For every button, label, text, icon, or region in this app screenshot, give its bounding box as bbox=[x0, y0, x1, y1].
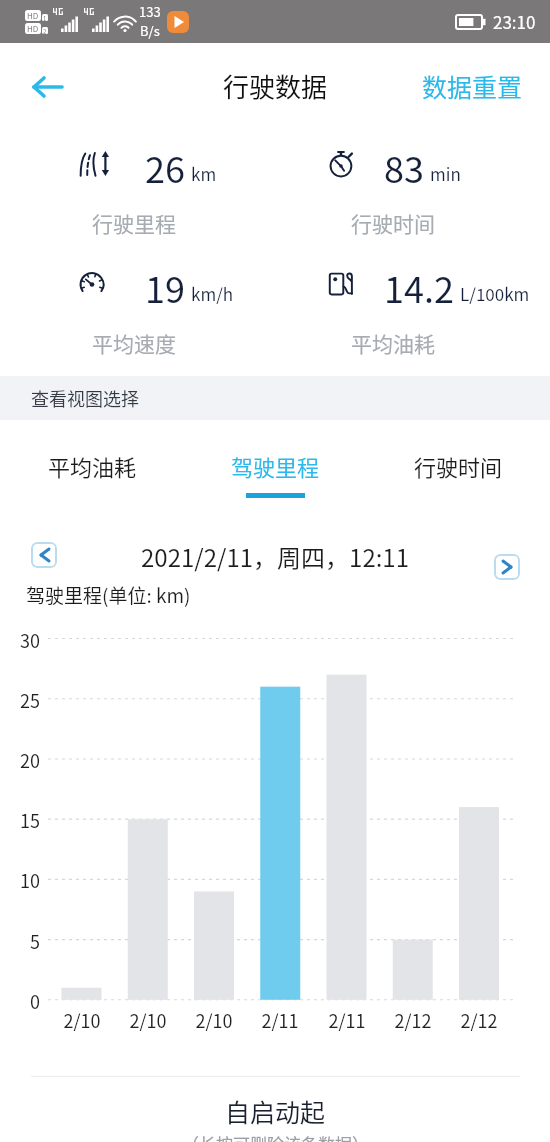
staticText: 2/10 bbox=[115, 1007, 181, 1033]
staticText: 查看视图选择 bbox=[31, 385, 139, 411]
staticText: 2 bbox=[43, 27, 47, 34]
staticText: 数据重置 bbox=[422, 68, 523, 104]
staticText: 2/12 bbox=[446, 1007, 512, 1033]
staticText: 23:10 bbox=[493, 9, 536, 34]
staticText: 驾驶里程 bbox=[231, 450, 320, 482]
staticText: 25 bbox=[0, 687, 40, 713]
staticText: 5 bbox=[0, 928, 40, 954]
staticText: km/h bbox=[191, 281, 234, 306]
staticText: B/s bbox=[140, 21, 160, 40]
staticText: 2021/2/11，周四，12:11 bbox=[141, 539, 410, 574]
staticText: 10 bbox=[0, 867, 40, 893]
staticText: min bbox=[430, 161, 461, 186]
staticText: 20 bbox=[0, 747, 40, 773]
staticText: 30 bbox=[0, 627, 40, 653]
staticText: 2/11 bbox=[314, 1007, 380, 1033]
staticText: 14.2 bbox=[384, 261, 454, 313]
button[interactable]: 数据重置 bbox=[422, 68, 523, 104]
staticText: 驾驶里程(单位: km) bbox=[26, 581, 191, 609]
button[interactable]: Back bbox=[18, 58, 75, 115]
staticText: km bbox=[191, 161, 217, 186]
staticText: 2/10 bbox=[49, 1007, 115, 1033]
staticText: 自启动起 bbox=[225, 1093, 326, 1129]
button[interactable]: Next bbox=[494, 554, 520, 580]
staticText: 行驶时间 bbox=[414, 450, 503, 482]
staticText: 0 bbox=[0, 988, 40, 1014]
staticText: 平均油耗 bbox=[351, 328, 435, 358]
staticText: 2/12 bbox=[380, 1007, 446, 1033]
staticText: HD bbox=[27, 10, 39, 21]
staticText: 15 bbox=[0, 807, 40, 833]
button[interactable]: 平均油耗 bbox=[0, 438, 184, 500]
staticText: 行驶里程 bbox=[92, 208, 176, 238]
staticText: 行驶时间 bbox=[351, 208, 435, 238]
staticText: 平均速度 bbox=[92, 328, 176, 358]
staticText: 133 bbox=[139, 2, 161, 21]
staticText: 1 bbox=[43, 14, 47, 21]
button[interactable]: 驾驶里程 bbox=[184, 438, 367, 500]
staticText: 26 bbox=[145, 141, 185, 193]
staticText: 19 bbox=[145, 261, 185, 313]
staticText: 行驶数据 bbox=[223, 67, 328, 105]
staticText: 2/10 bbox=[181, 1007, 247, 1033]
staticText: （长按可删除该条数据） bbox=[182, 1131, 369, 1142]
button[interactable]: 行驶时间 bbox=[367, 438, 550, 500]
staticText: 平均油耗 bbox=[48, 450, 137, 482]
staticText: L/100km bbox=[460, 281, 530, 306]
staticText: 83 bbox=[384, 141, 424, 193]
staticText: HD bbox=[27, 23, 39, 34]
staticText: 2/11 bbox=[247, 1007, 313, 1033]
button[interactable]: Previous bbox=[31, 542, 57, 568]
